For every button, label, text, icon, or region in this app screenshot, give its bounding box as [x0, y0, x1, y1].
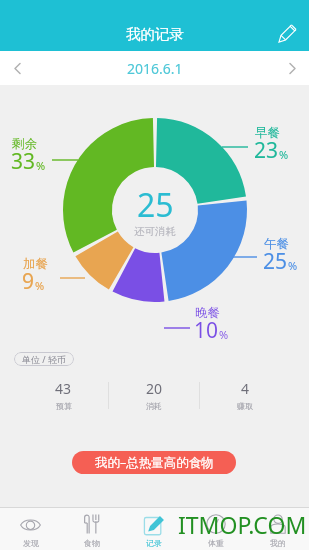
staticText: 25: [137, 183, 174, 227]
staticText: 9: [22, 267, 35, 296]
staticText: 10: [194, 316, 219, 345]
button[interactable]: 4: [200, 379, 290, 410]
staticText: 发现: [23, 538, 39, 548]
staticText: 20: [146, 379, 163, 398]
button[interactable]: 我的: [247, 508, 309, 550]
staticText: 晚餐: [195, 305, 220, 321]
staticText: 25: [263, 247, 288, 276]
staticText: 剩余: [12, 136, 37, 152]
button[interactable]: 20: [109, 379, 199, 410]
button[interactable]: 我的–总热量高的食物: [72, 451, 236, 474]
staticText: 33: [11, 147, 36, 176]
button[interactable]: Edit: [269, 15, 305, 51]
staticText: 4: [241, 379, 250, 398]
button[interactable]: Previous day: [0, 51, 34, 85]
button[interactable]: 食物: [61, 508, 123, 550]
button[interactable]: 单位 / 轻币: [14, 352, 74, 366]
staticText: %: [219, 327, 229, 342]
staticText: 23: [254, 136, 279, 165]
staticText: 加餐: [23, 256, 48, 272]
staticText: %: [279, 147, 289, 162]
staticText: 预算: [56, 401, 72, 410]
button[interactable]: 43: [19, 379, 108, 410]
staticText: %: [36, 158, 46, 173]
staticText: %: [35, 278, 45, 293]
staticText: 43: [55, 379, 72, 398]
staticText: 赚取: [237, 401, 253, 410]
button[interactable]: 体重: [185, 508, 247, 550]
staticText: 还可消耗: [134, 225, 176, 238]
staticText: 食物: [84, 538, 100, 548]
staticText: 2016.6.1: [127, 59, 183, 78]
staticText: 午餐: [264, 236, 289, 252]
staticText: 我的记录: [126, 25, 184, 43]
staticText: 单位 / 轻币: [22, 353, 67, 365]
staticText: ITMOP.COM: [178, 509, 307, 540]
staticText: 我的: [270, 538, 286, 548]
staticText: 我的–总热量高的食物: [95, 454, 214, 471]
staticText: 消耗: [146, 401, 162, 410]
button[interactable]: 发现: [0, 508, 61, 550]
staticText: 记录: [146, 538, 162, 548]
staticText: %: [288, 258, 298, 273]
button[interactable]: Next day: [275, 51, 309, 85]
button[interactable]: 记录: [123, 508, 185, 550]
staticText: 早餐: [255, 125, 280, 141]
staticText: 体重: [208, 538, 224, 548]
